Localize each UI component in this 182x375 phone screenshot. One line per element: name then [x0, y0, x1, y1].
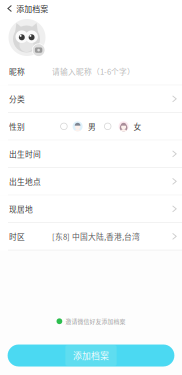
- staticText: 添加档案: [73, 349, 109, 362]
- staticText: 请输入昵称（1-6个字）: [52, 66, 135, 77]
- staticText: 添加档案: [16, 3, 48, 14]
- staticText: 分类: [9, 93, 25, 104]
- staticText: 出生地点: [9, 176, 41, 187]
- button[interactable]: 出生时间: [0, 140, 182, 168]
- button[interactable]: 出生地点: [0, 168, 182, 195]
- button[interactable]: Change avatar: [8, 19, 45, 56]
- staticText: 性别: [9, 121, 25, 132]
- staticText: 出生时间: [9, 148, 41, 159]
- staticText: 时区: [9, 231, 25, 242]
- button[interactable]: 分类: [0, 85, 182, 113]
- button[interactable]: 添加档案: [8, 344, 174, 366]
- button[interactable]: 时区: [0, 223, 182, 250]
- staticText: 现居地: [9, 203, 33, 214]
- staticText: 男: [88, 121, 96, 132]
- staticText: 邀请微信好友添加档案: [65, 317, 125, 325]
- button[interactable]: 昵称: [0, 58, 182, 85]
- button[interactable]: 性别: [0, 113, 182, 140]
- button[interactable]: 添加档案: [0, 0, 56, 17]
- staticText: 昵称: [9, 66, 25, 77]
- staticText: 女: [134, 121, 142, 132]
- button[interactable]: 邀请微信好友添加档案: [52, 313, 129, 329]
- staticText: [东8] 中国大陆,香港,台湾: [52, 231, 140, 242]
- button[interactable]: 现居地: [0, 195, 182, 223]
